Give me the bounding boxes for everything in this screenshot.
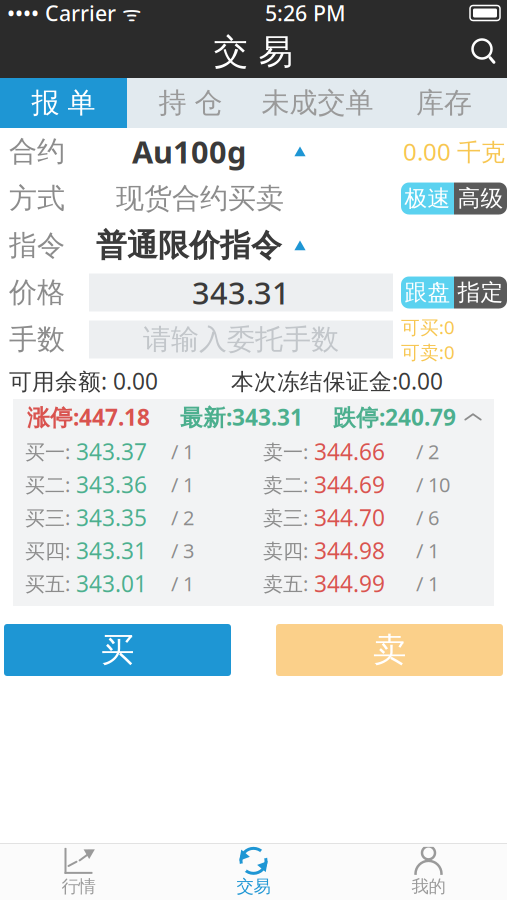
staticText: 343.35 (70, 502, 147, 532)
staticText: 跟盘 (404, 279, 450, 306)
staticText: 报 单 (31, 86, 95, 120)
staticText: 卖二: (263, 471, 308, 498)
button[interactable]: 交易 (166, 844, 341, 900)
staticText: 343.31 (70, 535, 147, 565)
staticText: 行情 (61, 876, 95, 897)
staticText: 极速 (404, 185, 450, 212)
staticText: 交 易 (213, 31, 293, 73)
staticText: 最新:343.31 (180, 402, 303, 432)
button[interactable]: 未成交单 (254, 78, 381, 128)
staticText: •••• Carrier ᯤ (7, 0, 141, 27)
staticText: 344.66 (308, 436, 385, 466)
staticText: / 1 (171, 570, 194, 597)
staticText: 343.37 (70, 436, 147, 466)
button[interactable]: 极速 (401, 182, 507, 214)
staticText: 可买:0 (401, 315, 455, 339)
staticText: / 10 (416, 471, 450, 498)
staticText: 方式 (9, 181, 65, 216)
staticText: / 6 (416, 504, 439, 531)
staticText: 合约 (9, 134, 65, 169)
staticText: Au100g (132, 131, 246, 172)
button[interactable]: 343.31 (89, 273, 393, 311)
staticText: / 1 (171, 471, 194, 498)
button[interactable]: 买 (4, 624, 231, 676)
staticText: 买四: (25, 537, 70, 564)
button[interactable]: 持 仓 (127, 78, 254, 128)
staticText: 买二: (25, 471, 70, 498)
button[interactable]: 普通限价指令 (89, 227, 311, 264)
staticText: 卖 (373, 629, 406, 670)
staticText: / 1 (416, 537, 439, 564)
staticText: 买一: (25, 438, 70, 465)
staticText: 跌停:240.79 (333, 402, 456, 432)
staticText: 买五: (25, 570, 70, 597)
staticText: 未成交单 (261, 86, 373, 120)
button[interactable]: 跟盘 (401, 276, 507, 308)
staticText: 344.98 (308, 535, 385, 565)
staticText: 持 仓 (158, 86, 222, 120)
button[interactable]: 请输入委托手数 (89, 320, 393, 358)
staticText: 普通限价指令 (96, 227, 282, 264)
staticText: 库存 (416, 86, 472, 120)
staticText: 高级 (457, 185, 503, 212)
staticText: 卖四: (263, 537, 308, 564)
staticText: 我的 (411, 876, 445, 897)
staticText: 344.69 (308, 469, 385, 499)
button[interactable]: 收起 (456, 400, 490, 434)
staticText: 买三: (25, 504, 70, 531)
staticText: / 1 (416, 570, 439, 597)
staticText: / 2 (171, 504, 194, 531)
button[interactable]: 报 单 (0, 78, 127, 128)
staticText: 指令 (9, 228, 65, 263)
staticText: 343.01 (70, 568, 147, 598)
staticText: 可用余额: 0.00 (9, 366, 158, 396)
staticText: 卖五: (263, 570, 308, 597)
staticText: / 1 (171, 438, 194, 465)
staticText: 请输入委托手数 (143, 322, 339, 357)
staticText: 卖三: (263, 504, 308, 531)
staticText: 卖一: (263, 438, 308, 465)
staticText: / 2 (416, 438, 439, 465)
staticText: 价格 (9, 275, 65, 310)
staticText: 涨停:447.18 (27, 402, 150, 432)
button[interactable]: 卖 (276, 624, 503, 676)
button[interactable]: 行情 (0, 844, 166, 900)
button[interactable]: 搜索 (462, 30, 506, 74)
staticText: 343.36 (70, 469, 147, 499)
staticText: 344.99 (308, 568, 385, 598)
staticText: 手数 (9, 322, 65, 357)
staticText: 344.70 (308, 502, 385, 532)
staticText: 买 (101, 629, 134, 670)
button[interactable]: 我的 (341, 844, 507, 900)
button[interactable]: Au100g (89, 131, 311, 172)
staticText: 指定 (457, 279, 503, 306)
staticText: 本次冻结保证金:0.00 (231, 366, 443, 396)
button[interactable]: 库存 (381, 78, 507, 128)
staticText: / 3 (171, 537, 194, 564)
staticText: 可卖:0 (401, 339, 455, 364)
staticText: 现货合约买卖 (116, 181, 284, 216)
staticText: 5:26 PM (265, 0, 346, 27)
staticText: 交易 (236, 876, 270, 897)
staticText: 0.00 千克 (403, 136, 505, 167)
staticText: 343.31 (192, 272, 290, 313)
